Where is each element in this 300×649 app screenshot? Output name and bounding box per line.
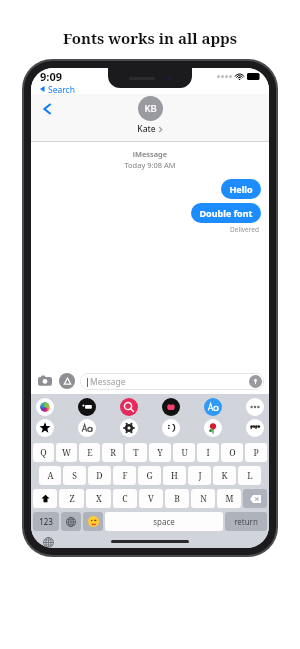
button[interactable]: I	[197, 443, 219, 462]
button[interactable]: U	[173, 443, 195, 462]
button[interactable]: return	[225, 512, 267, 531]
staticText: Y	[157, 447, 163, 459]
staticText: G	[146, 470, 153, 482]
button[interactable]: App	[204, 398, 222, 416]
button[interactable]: M	[217, 489, 241, 508]
button[interactable]: App	[120, 419, 138, 437]
staticText: D	[96, 470, 103, 482]
button[interactable]: App	[246, 398, 264, 416]
staticText: W	[62, 447, 71, 459]
button[interactable]: E	[79, 443, 100, 462]
button[interactable]: Switch keyboard	[61, 512, 81, 531]
staticText: O	[229, 447, 236, 459]
staticText: Search	[48, 84, 75, 94]
staticText: 123	[39, 516, 53, 527]
button[interactable]: F	[113, 466, 136, 485]
button[interactable]: G	[138, 466, 161, 485]
button[interactable]: O	[221, 443, 243, 462]
staticText: Today 9:08 AM	[31, 160, 269, 170]
button[interactable]: A	[39, 466, 61, 485]
staticText: P	[253, 447, 259, 459]
button[interactable]: J	[188, 466, 211, 485]
button[interactable]: Camera	[36, 372, 54, 390]
button[interactable]: H	[163, 466, 186, 485]
staticText: space	[153, 516, 175, 527]
button[interactable]: App	[246, 419, 264, 437]
staticText: Delivered	[31, 225, 259, 234]
staticText: Message	[90, 376, 126, 388]
button[interactable]: B	[165, 489, 189, 508]
staticText: iMessage	[31, 149, 269, 159]
button[interactable]: R	[102, 443, 123, 462]
staticText: U	[181, 447, 188, 459]
button[interactable]: Back	[35, 96, 61, 122]
staticText: Fonts works in all apps	[63, 28, 237, 48]
button[interactable]: App	[78, 398, 96, 416]
button[interactable]: P	[245, 443, 267, 462]
staticText: KB	[144, 102, 157, 115]
staticText: H	[171, 470, 178, 482]
staticText: B	[174, 493, 180, 505]
button[interactable]: V	[139, 489, 163, 508]
staticText: M	[225, 493, 234, 505]
button[interactable]: S	[63, 466, 86, 485]
button[interactable]: Shift	[33, 489, 57, 508]
button[interactable]: App	[36, 398, 54, 416]
staticText: V	[148, 493, 154, 505]
button[interactable]: Y	[149, 443, 171, 462]
staticText: N	[200, 493, 207, 505]
staticText: 9:09	[40, 69, 62, 84]
button[interactable]: Message	[80, 373, 264, 390]
button[interactable]: App	[162, 398, 180, 416]
button[interactable]: space	[105, 512, 223, 531]
staticText: A	[47, 470, 54, 482]
button[interactable]: W	[56, 443, 77, 462]
staticText: L	[247, 470, 253, 482]
staticText: R	[110, 447, 116, 459]
button[interactable]: Dictate	[249, 375, 262, 388]
staticText: F	[122, 470, 128, 482]
button[interactable]: Backspace	[243, 489, 267, 508]
button[interactable]: C	[113, 489, 137, 508]
button[interactable]: App	[36, 419, 54, 437]
button[interactable]: 123	[33, 512, 59, 531]
staticText: I	[206, 447, 210, 459]
button[interactable]: Z	[59, 489, 84, 508]
button[interactable]: App	[78, 419, 96, 437]
staticText: Double font	[199, 207, 253, 219]
button[interactable]: Q	[33, 443, 54, 462]
staticText: C	[122, 493, 128, 505]
button[interactable]: K	[213, 466, 236, 485]
staticText: S	[72, 470, 77, 482]
staticText: return	[234, 516, 258, 527]
button[interactable]: Globe	[41, 537, 55, 548]
button[interactable]: App	[120, 398, 138, 416]
staticText: Hello	[229, 183, 253, 195]
button[interactable]: D	[88, 466, 111, 485]
staticText: T	[133, 447, 139, 459]
staticText: K	[221, 470, 228, 482]
button[interactable]: X	[86, 489, 111, 508]
button[interactable]: App	[162, 419, 180, 437]
button[interactable]: L	[238, 466, 261, 485]
staticText: Kate	[137, 123, 156, 135]
staticText: Q	[40, 447, 47, 459]
staticText: J	[198, 470, 202, 482]
button[interactable]: T	[125, 443, 147, 462]
button[interactable]: App Store	[59, 373, 75, 389]
button[interactable]: KB	[137, 96, 163, 135]
staticText: Z	[69, 493, 75, 505]
staticText: E	[87, 447, 93, 459]
button[interactable]: Emoji	[83, 512, 103, 531]
staticText: X	[96, 493, 102, 505]
button[interactable]: Hello	[221, 179, 261, 199]
button[interactable]: App	[204, 419, 222, 437]
button[interactable]: N	[191, 489, 215, 508]
button[interactable]: Double font	[191, 203, 261, 223]
